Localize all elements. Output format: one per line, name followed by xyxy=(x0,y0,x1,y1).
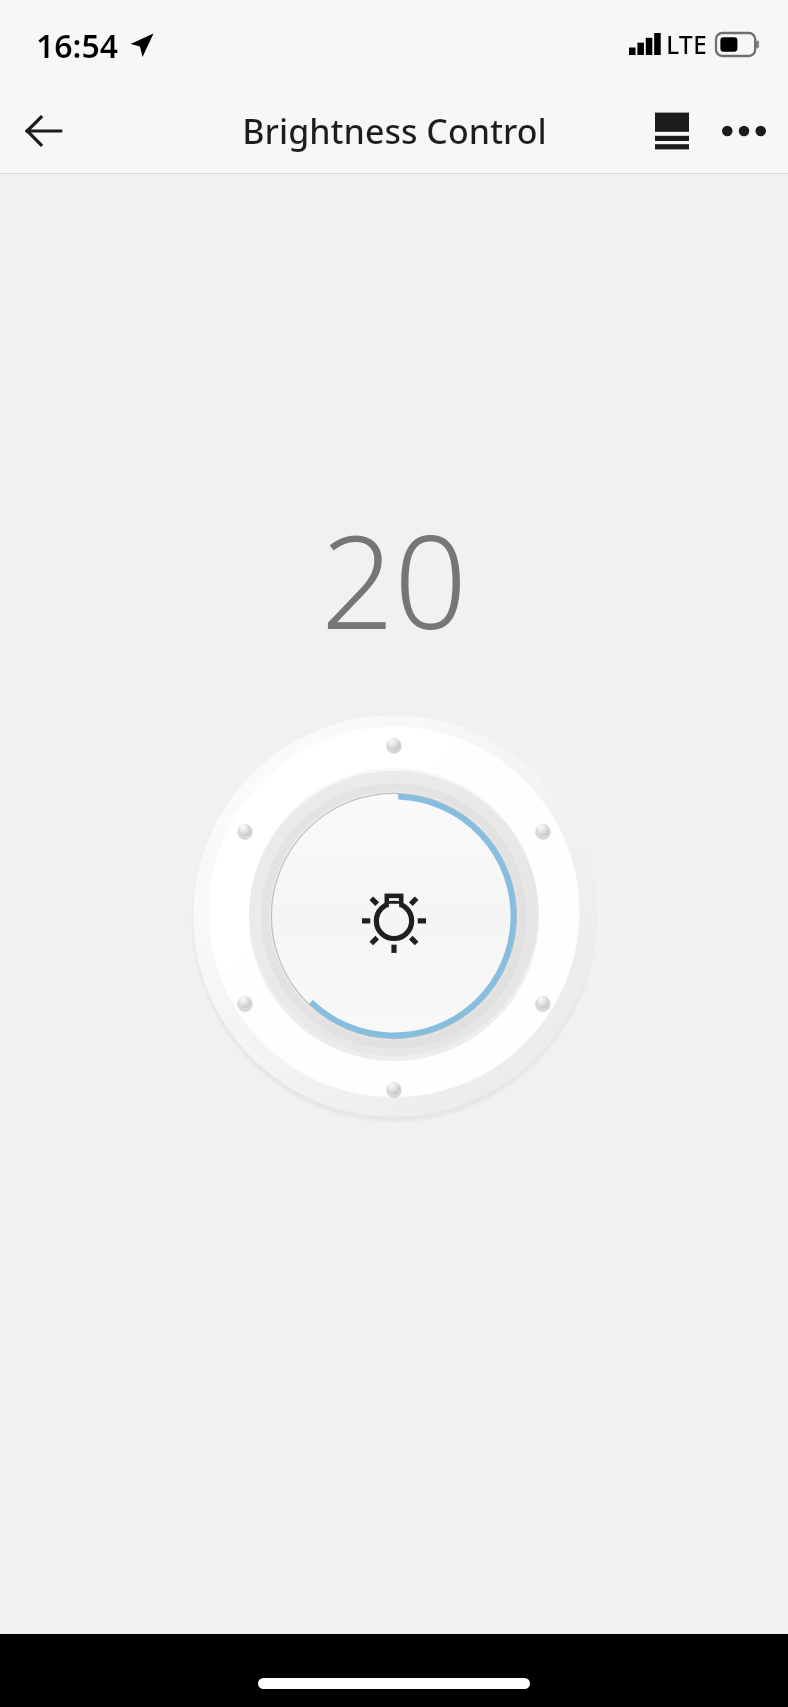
button[interactable]: Brightness dial xyxy=(188,710,600,1122)
button[interactable]: View mode xyxy=(638,97,706,165)
button[interactable]: More options xyxy=(706,93,782,169)
staticText: 20 xyxy=(321,492,468,666)
staticText: 16:54 xyxy=(36,24,119,68)
button[interactable]: Back xyxy=(8,95,80,167)
staticText: LTE xyxy=(666,27,707,61)
staticText: Brightness Control xyxy=(242,108,547,154)
